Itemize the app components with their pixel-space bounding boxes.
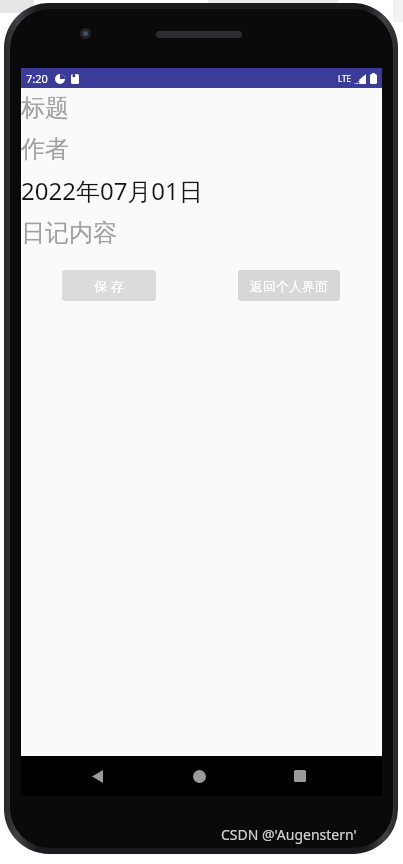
button[interactable]: 2022年07月01日 [21,174,382,207]
staticText: 7:20 [26,71,48,86]
staticText: 标题 [21,93,69,123]
staticText: 保 存 [94,277,124,295]
staticText: 日记内容 [21,218,117,248]
staticText: 返回个人界面 [250,278,328,294]
button[interactable]: Recent apps [270,756,330,796]
button[interactable]: 日记内容 [21,218,382,248]
staticText: CSDN @'Augenstern' [221,825,357,844]
button[interactable]: 标题 [21,93,382,123]
button[interactable]: 作者 [21,134,382,164]
button[interactable]: Back [67,756,127,796]
button[interactable]: 保 存 [62,270,156,301]
button[interactable]: Home [169,756,229,796]
staticText: 2022年07月01日 [21,174,203,207]
button[interactable]: 返回个人界面 [238,270,340,301]
staticText: LTE [338,73,351,84]
staticText: 作者 [21,134,69,164]
